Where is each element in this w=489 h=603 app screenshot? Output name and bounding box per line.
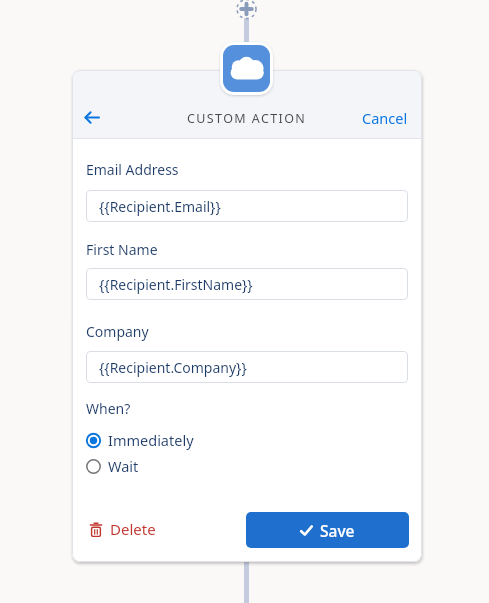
button[interactable] xyxy=(233,0,260,21)
button[interactable]: Delete xyxy=(86,518,156,540)
button[interactable] xyxy=(78,104,106,130)
staticText: {{Recipient.FirstName}} xyxy=(99,275,253,294)
staticText: First Name xyxy=(86,240,158,259)
staticText: Immediately xyxy=(108,430,194,450)
button[interactable]: {{Recipient.FirstName}} xyxy=(86,268,408,300)
button[interactable]: {{Recipient.Company}} xyxy=(86,351,408,383)
button[interactable]: {{Recipient.Email}} xyxy=(86,190,408,222)
staticText: Email Address xyxy=(86,160,179,179)
staticText: CUSTOM ACTION xyxy=(187,110,307,127)
staticText: Company xyxy=(86,322,149,341)
button[interactable]: Save xyxy=(246,512,409,548)
button[interactable]: Cancel xyxy=(356,102,414,134)
staticText: {{Recipient.Email}} xyxy=(99,197,221,216)
button[interactable] xyxy=(220,42,273,95)
staticText: Delete xyxy=(110,519,156,539)
staticText: Cancel xyxy=(362,108,408,128)
staticText: Save xyxy=(320,520,355,541)
staticText: Wait xyxy=(108,456,139,476)
staticText: {{Recipient.Company}} xyxy=(99,358,247,377)
button[interactable]: Wait xyxy=(86,456,139,476)
button[interactable]: Immediately xyxy=(86,430,194,450)
staticText: When? xyxy=(86,399,131,418)
